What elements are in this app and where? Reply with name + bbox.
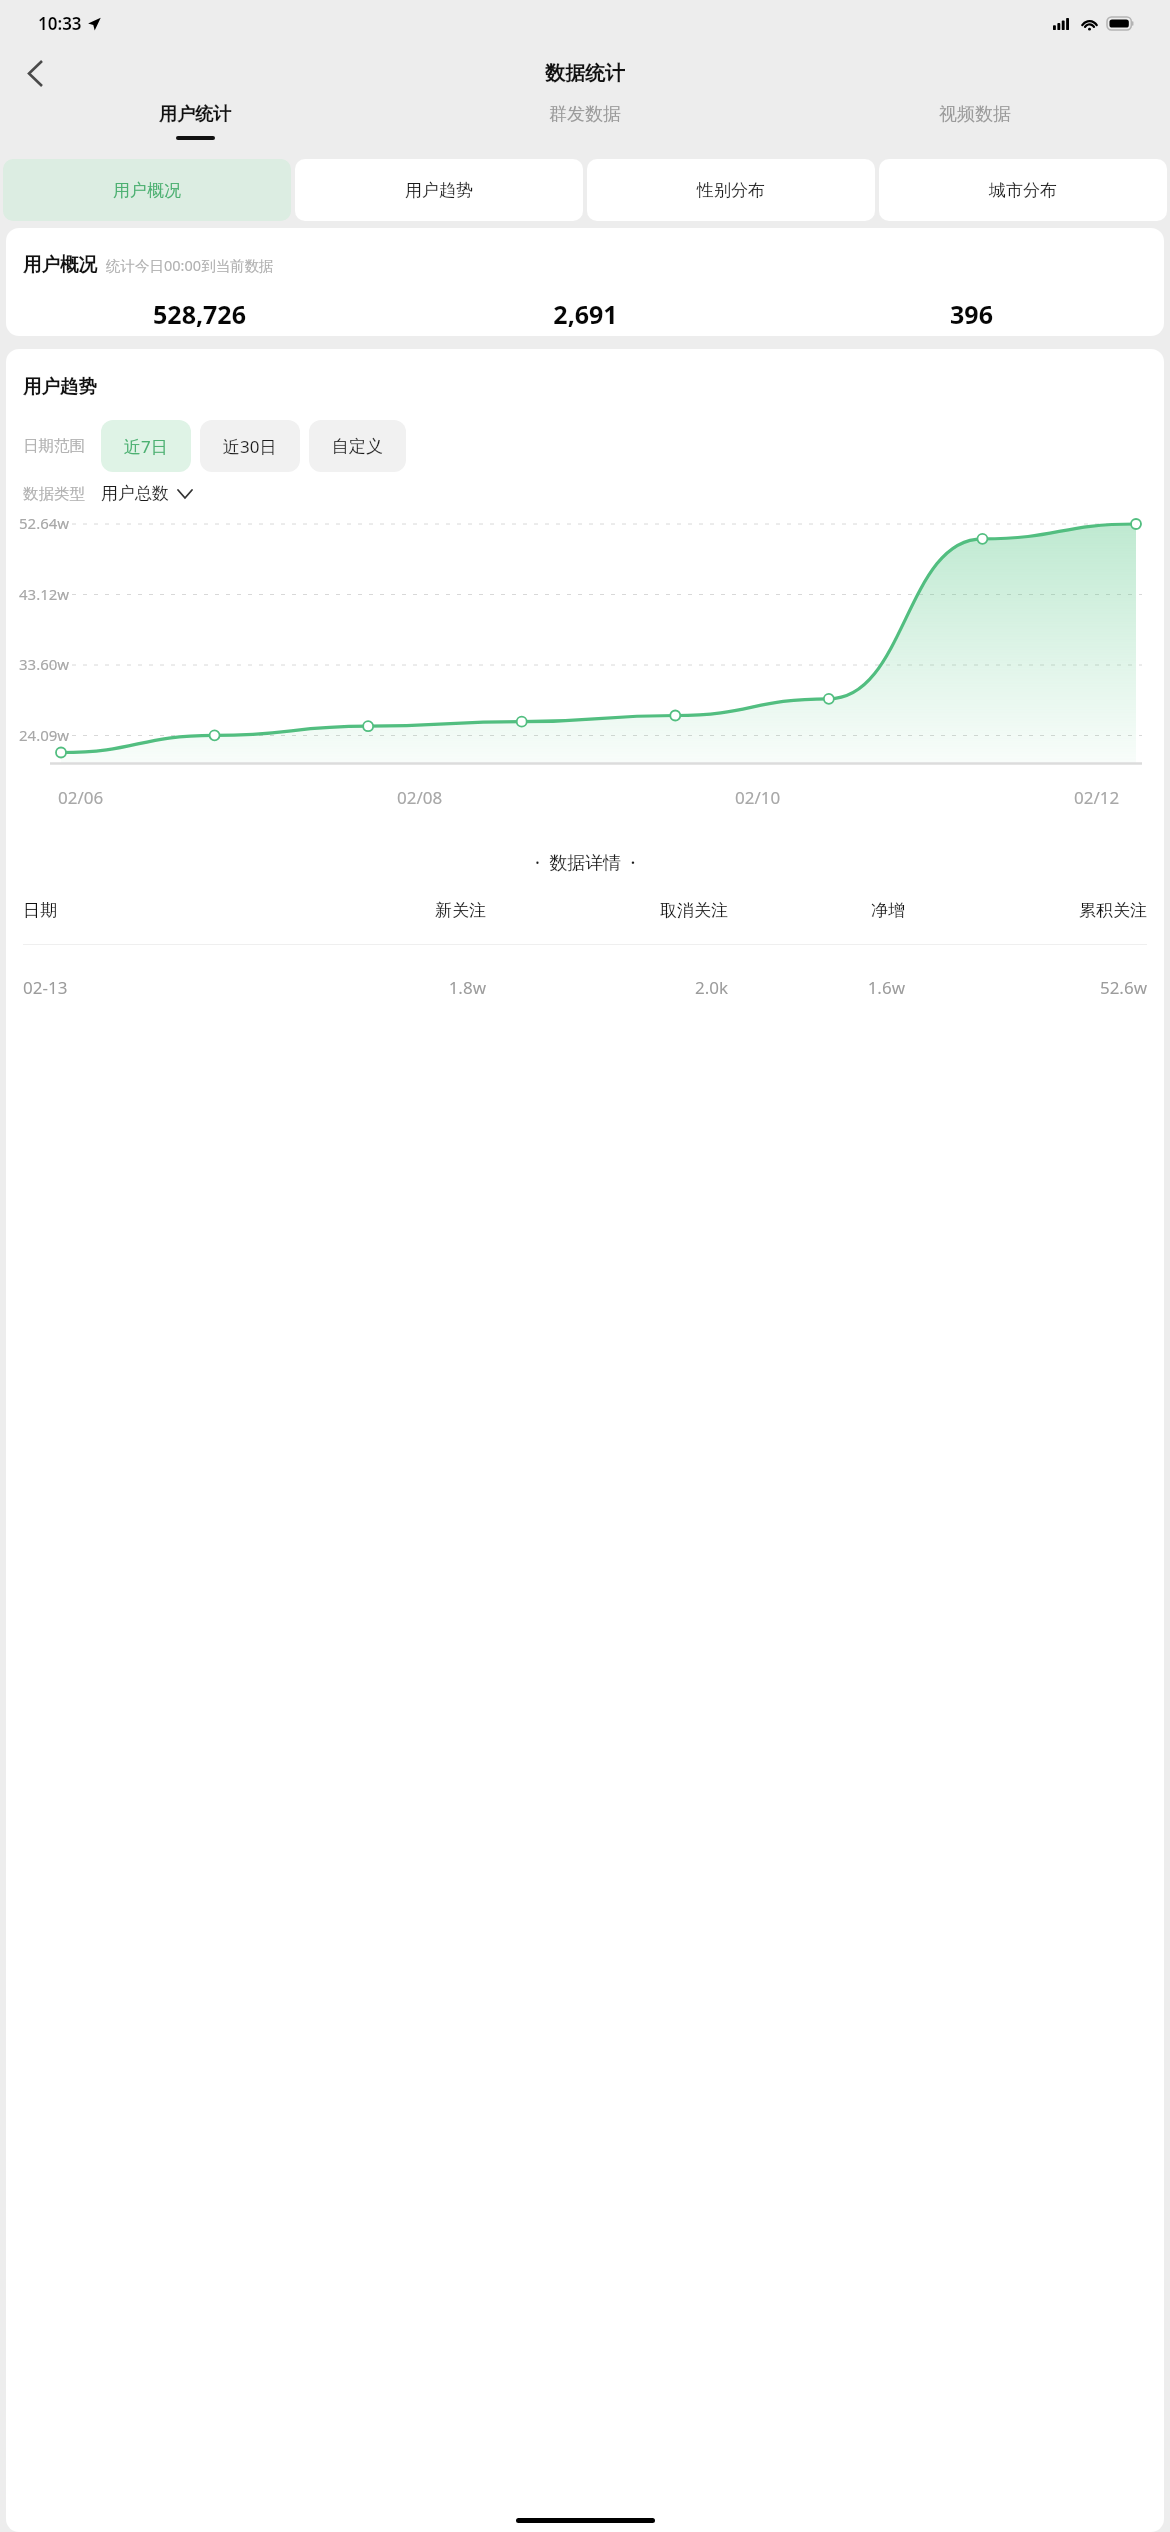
button[interactable]: Back <box>12 50 58 96</box>
staticText: 新关注 <box>270 900 486 921</box>
button[interactable]: 396 <box>778 297 1164 336</box>
staticText: 统计今日00:00到当前数据 <box>106 255 274 275</box>
staticText: 性别分布 <box>697 180 765 201</box>
staticText: 净增 <box>728 900 905 921</box>
staticText: 用户概况 <box>23 253 97 276</box>
button[interactable]: 近7日 <box>101 420 191 472</box>
staticText: 1.8w <box>270 976 486 999</box>
staticText: 用户趋势 <box>23 375 97 398</box>
staticText: 2.0k <box>486 976 728 999</box>
staticText: 自定义 <box>332 436 383 457</box>
staticText: 33.60w <box>19 654 70 674</box>
staticText: 取消关注 <box>486 900 728 921</box>
staticText: 日期 <box>23 900 270 921</box>
staticText: 数据类型 <box>23 484 85 504</box>
staticText: 2,691 <box>553 297 618 331</box>
staticText: 396 <box>950 297 993 331</box>
staticText: 10:33 <box>38 12 82 35</box>
button[interactable]: 2,691 <box>392 297 778 336</box>
staticText: 近7日 <box>124 435 168 458</box>
staticText: 用户总数 <box>101 483 169 504</box>
staticText: 1.6w <box>728 976 905 999</box>
button[interactable]: 用户趋势 <box>295 159 583 221</box>
button[interactable]: 城市分布 <box>879 159 1167 221</box>
staticText: 近30日 <box>223 435 277 458</box>
button[interactable]: 群发数据 <box>390 99 780 149</box>
button[interactable]: 用户概况 <box>3 159 291 221</box>
staticText: 02/06 <box>58 786 104 809</box>
staticText: 用户统计 <box>159 103 231 126</box>
staticText: 视频数据 <box>939 103 1011 126</box>
staticText: 528,726 <box>153 297 246 331</box>
button[interactable]: 528,726 <box>6 297 392 336</box>
staticText: 02/12 <box>1074 786 1120 809</box>
staticText: 用户趋势 <box>405 180 473 201</box>
button[interactable]: 视频数据 <box>780 99 1170 149</box>
staticText: 数据统计 <box>545 61 625 86</box>
staticText: 累积关注 <box>905 900 1147 921</box>
button[interactable]: 自定义 <box>309 420 406 472</box>
button[interactable]: 性别分布 <box>587 159 875 221</box>
staticText: 群发数据 <box>549 103 621 126</box>
staticText: 02/10 <box>735 786 781 809</box>
staticText: 02-13 <box>23 976 270 999</box>
staticText: 43.12w <box>19 584 70 604</box>
staticText: 用户概况 <box>113 180 181 201</box>
staticText: 日期范围 <box>23 436 85 456</box>
staticText: 52.6w <box>905 976 1147 999</box>
staticText: 52.64w <box>19 513 70 533</box>
staticText: · 数据详情 · <box>535 850 636 875</box>
staticText: 24.09w <box>19 725 70 745</box>
staticText: 城市分布 <box>989 180 1057 201</box>
button[interactable]: 数据类型 <box>23 483 192 504</box>
button[interactable]: 近30日 <box>200 420 300 472</box>
staticText: 02/08 <box>397 786 443 809</box>
button[interactable]: 用户统计 <box>0 99 390 149</box>
button[interactable]: 02-13 <box>23 976 1147 999</box>
